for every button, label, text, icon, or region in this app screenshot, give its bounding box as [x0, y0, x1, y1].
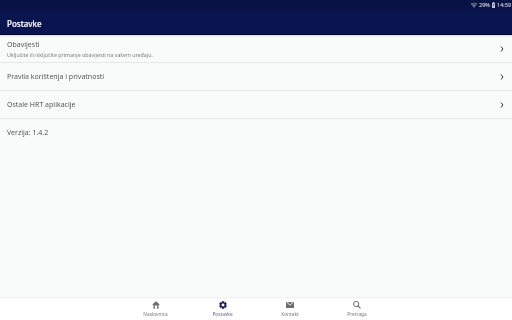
button[interactable]: Pravila korištenja i privatnosti	[0, 63, 512, 90]
staticText: Pravila korištenja i privatnosti	[7, 72, 499, 82]
other: Open	[499, 101, 505, 109]
staticText: 14:59	[497, 1, 512, 8]
staticText: 29%	[479, 1, 490, 8]
button[interactable]: Obavijesti	[0, 35, 512, 62]
staticText: Obavijesti	[7, 40, 40, 50]
staticText: Postavke	[7, 18, 42, 29]
staticText: Postavke	[212, 311, 233, 318]
staticText: Pretraga	[347, 311, 367, 318]
other: Open	[499, 73, 505, 81]
button[interactable]: Naslovnica	[122, 298, 189, 320]
staticText: Ostale HRT aplikacije	[7, 100, 499, 110]
staticText: Kontakt	[281, 311, 299, 318]
button[interactable]: Ostale HRT aplikacije	[0, 91, 512, 118]
staticText: Naslovnica	[143, 311, 168, 318]
button[interactable]: Pretraga	[323, 298, 390, 320]
staticText: Verzija: 1.4.2	[7, 128, 49, 138]
staticText: Uključite ili isključite primanje obavij…	[7, 51, 153, 58]
button[interactable]: Postavke	[189, 298, 256, 320]
button[interactable]: Kontakt	[256, 298, 323, 320]
other: Open	[499, 45, 505, 53]
